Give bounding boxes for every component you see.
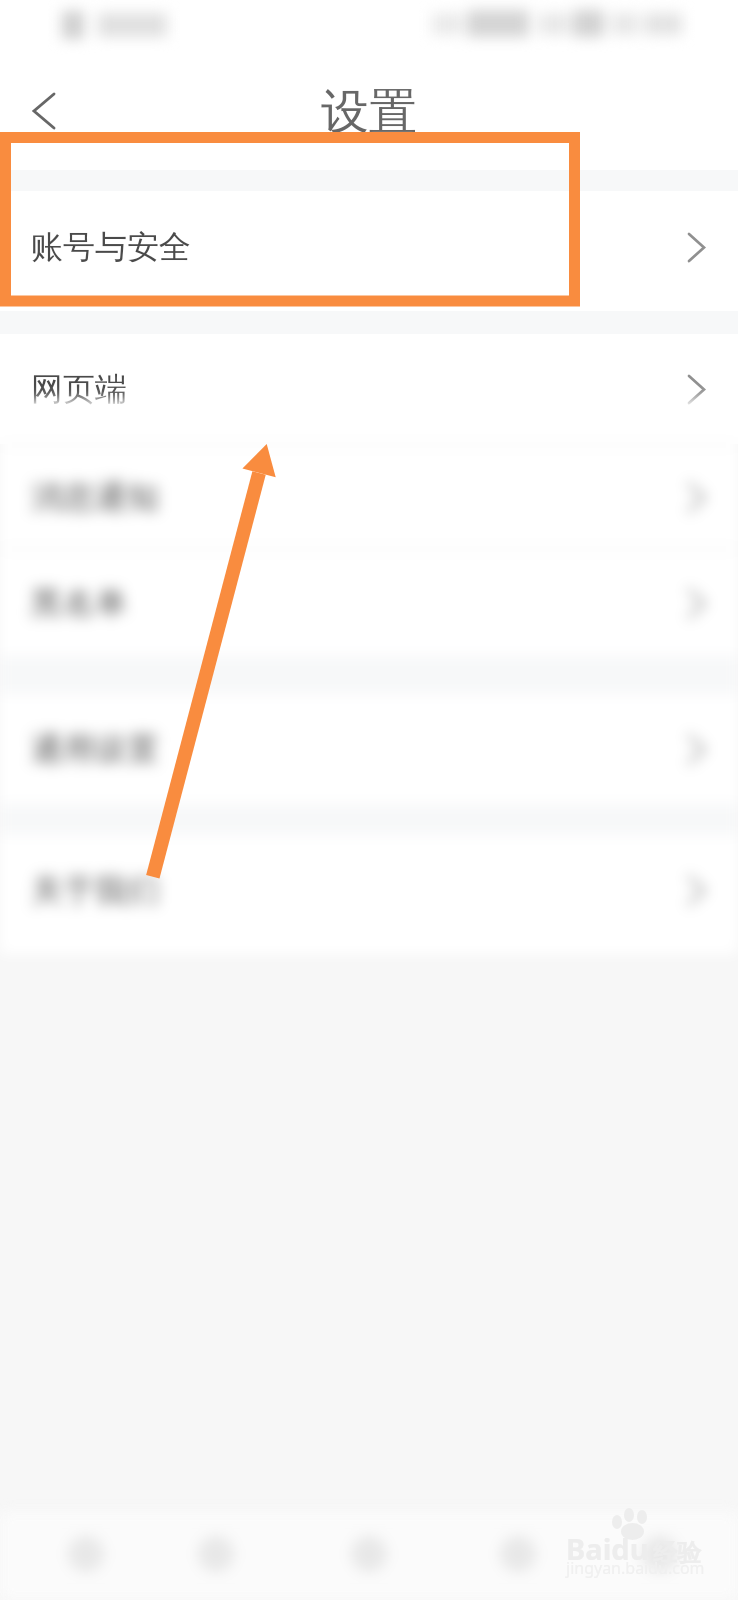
button[interactable]: 通用设置 [0,694,738,804]
staticText: 消息通知 [31,477,159,517]
button[interactable]: Back [14,81,74,141]
staticText: jingyan.baidu.com [566,1557,705,1579]
button[interactable]: 黑名单 [0,550,738,656]
staticText: Baidu [566,1529,649,1568]
button[interactable]: 账号与安全 [0,191,738,311]
button[interactable]: 网页端 [0,334,738,444]
staticText: 网页端 [31,369,127,409]
staticText: 关于我们 [31,870,159,910]
staticText: 账号与安全 [31,227,191,267]
button[interactable]: 关于我们 [0,835,738,945]
staticText: 通用设置 [31,729,159,769]
staticText: 设置 [321,82,417,142]
staticText: 黑名单 [31,583,127,623]
button[interactable]: 消息通知 [0,446,738,548]
staticText: 经验 [653,1538,701,1568]
